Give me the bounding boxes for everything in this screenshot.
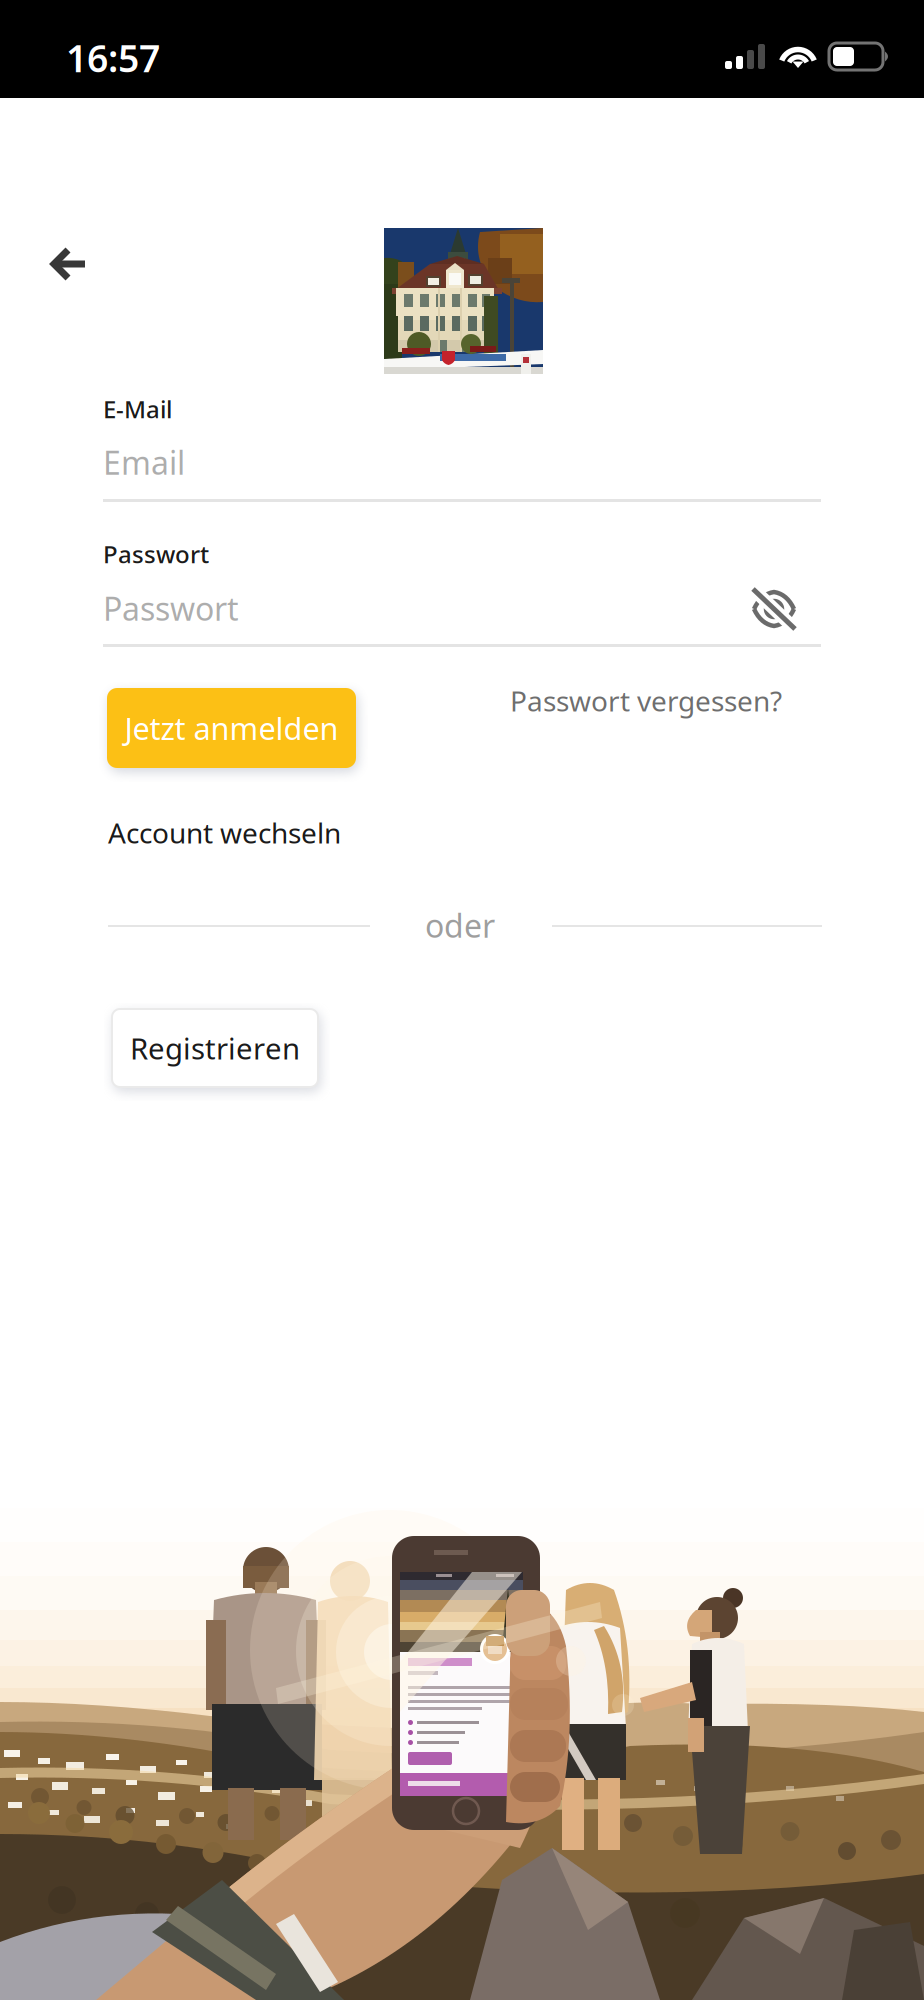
button[interactable]: Back [34,231,104,297]
button[interactable]: Passwort vergessen? [510,682,782,719]
staticText: oder [425,904,495,946]
staticText: Jetzt anmelden [124,708,338,748]
staticText: 16:57 [66,33,160,83]
button[interactable]: Registrieren [112,1009,318,1087]
button[interactable]: Account wechseln [108,814,341,851]
staticText: E-Mail [103,393,172,425]
staticText: Passwort [103,538,209,570]
staticText: Passwort [103,587,239,629]
button[interactable]: Show password [752,588,796,630]
button[interactable]: Jetzt anmelden [107,688,356,768]
staticText: Email [103,441,185,483]
staticText: Account wechseln [108,814,341,851]
staticText: Passwort vergessen? [510,682,782,719]
staticText: Registrieren [130,1028,300,1067]
